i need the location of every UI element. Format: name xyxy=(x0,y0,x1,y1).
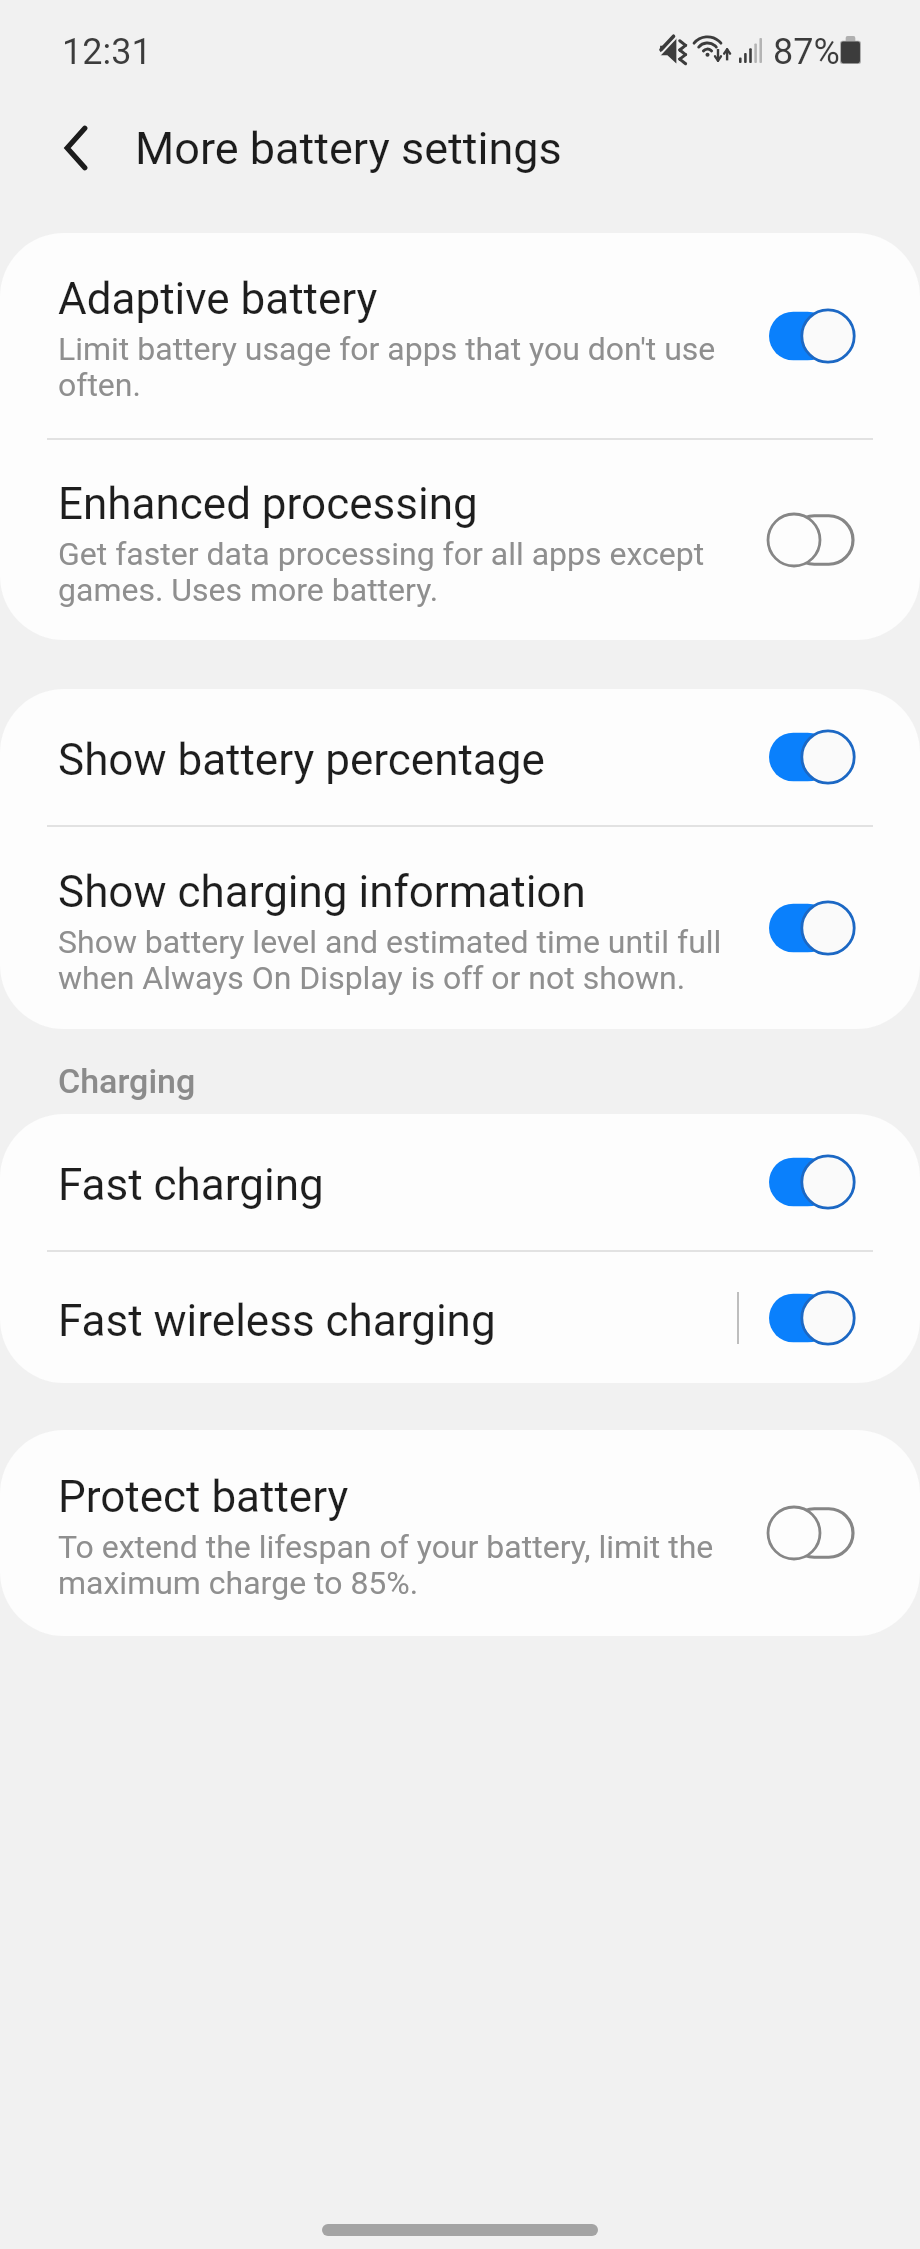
button[interactable]: Show charging information xyxy=(0,827,920,1029)
staticText: Protect battery xyxy=(58,1474,349,1522)
button[interactable]: On xyxy=(769,900,856,956)
staticText: Get faster data processing for all apps … xyxy=(58,536,745,608)
button[interactable]: Back xyxy=(37,109,115,187)
staticText: Show battery level and estimated time un… xyxy=(58,924,745,996)
button[interactable]: Show battery percentage xyxy=(0,689,920,825)
staticText: To extend the lifespan of your battery, … xyxy=(58,1529,745,1601)
staticText: Charging xyxy=(58,1061,196,1101)
staticText: Enhanced processing xyxy=(58,481,478,529)
staticText: Adaptive battery xyxy=(58,276,378,324)
staticText: More battery settings xyxy=(135,122,562,175)
button[interactable]: Off xyxy=(769,1505,856,1561)
staticText: Limit battery usage for apps that you do… xyxy=(58,331,745,403)
button[interactable]: Off xyxy=(769,512,856,568)
button[interactable]: Protect battery xyxy=(0,1430,920,1636)
button[interactable]: Enhanced processing xyxy=(0,440,920,640)
staticText: Show charging information xyxy=(58,869,586,917)
button[interactable]: On xyxy=(769,308,856,364)
staticText: 12:31 xyxy=(62,31,152,73)
staticText: Fast wireless charging xyxy=(58,1298,496,1346)
staticText: 87% xyxy=(773,31,840,73)
button[interactable]: On xyxy=(769,729,856,785)
staticText: Show battery percentage xyxy=(58,737,545,785)
button[interactable]: On xyxy=(769,1290,856,1346)
button[interactable]: Fast wireless charging xyxy=(0,1252,920,1383)
button[interactable]: On xyxy=(769,1154,856,1210)
button[interactable]: Adaptive battery xyxy=(0,233,920,438)
button[interactable]: Fast charging xyxy=(0,1114,920,1250)
staticText: Fast charging xyxy=(58,1162,324,1210)
